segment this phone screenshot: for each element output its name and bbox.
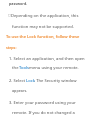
staticText: function may not be supported. (12, 24, 74, 30)
staticText: To use the Lock function, follow these (6, 34, 80, 40)
button[interactable]: Lock (26, 78, 35, 84)
staticText: □ (8, 13, 11, 16)
staticText: the (12, 65, 20, 71)
staticText: . The Security window (34, 78, 77, 84)
staticText: remote. If you do not changed a (12, 110, 75, 116)
staticText: 3. Enter your password using your (9, 100, 76, 106)
staticText: 2. Select (9, 78, 27, 84)
staticText: menu using your remote. (29, 65, 79, 71)
staticText: Depending on the application, this (11, 13, 79, 19)
staticText: appears. (12, 88, 28, 93)
staticText: 1. Select an application, and then open (9, 56, 85, 62)
staticText: steps: (6, 45, 17, 50)
button[interactable]: Tools (19, 65, 30, 71)
staticText: password. (9, 1, 28, 6)
